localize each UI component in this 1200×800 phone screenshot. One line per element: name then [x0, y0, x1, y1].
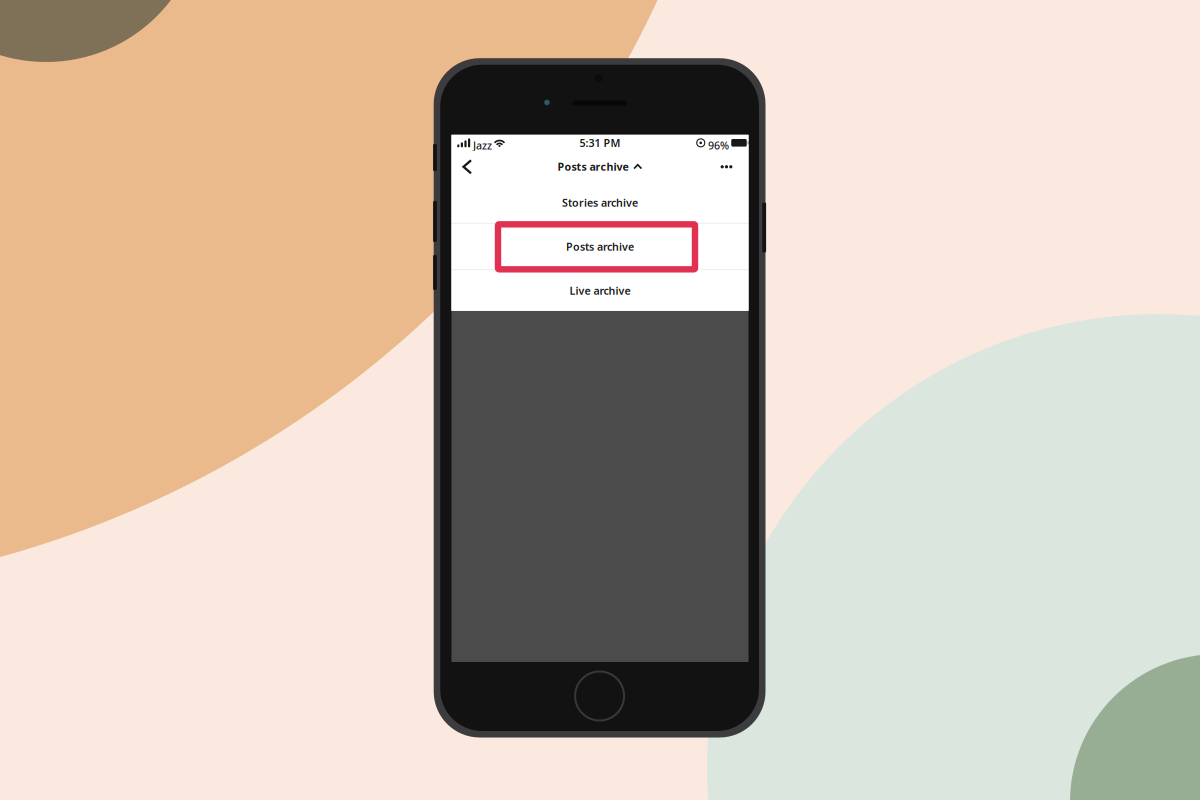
- staticText: 5:31 PM: [579, 136, 620, 150]
- button[interactable]: Dismiss: [451, 135, 748, 662]
- staticText: Live archive: [569, 283, 630, 298]
- button[interactable]: Posts archive: [451, 224, 748, 269]
- button[interactable]: Live archive: [451, 270, 748, 311]
- button[interactable]: Posts archive: [549, 151, 650, 182]
- staticText: Stories archive: [562, 195, 638, 210]
- button[interactable]: Stories archive: [451, 182, 748, 223]
- button[interactable]: More options: [712, 153, 740, 181]
- staticText: Posts archive: [557, 159, 628, 174]
- staticText: Jazz: [473, 138, 492, 153]
- button[interactable]: Back: [453, 153, 481, 181]
- staticText: Posts archive: [566, 239, 634, 254]
- staticText: 96%: [708, 138, 729, 153]
